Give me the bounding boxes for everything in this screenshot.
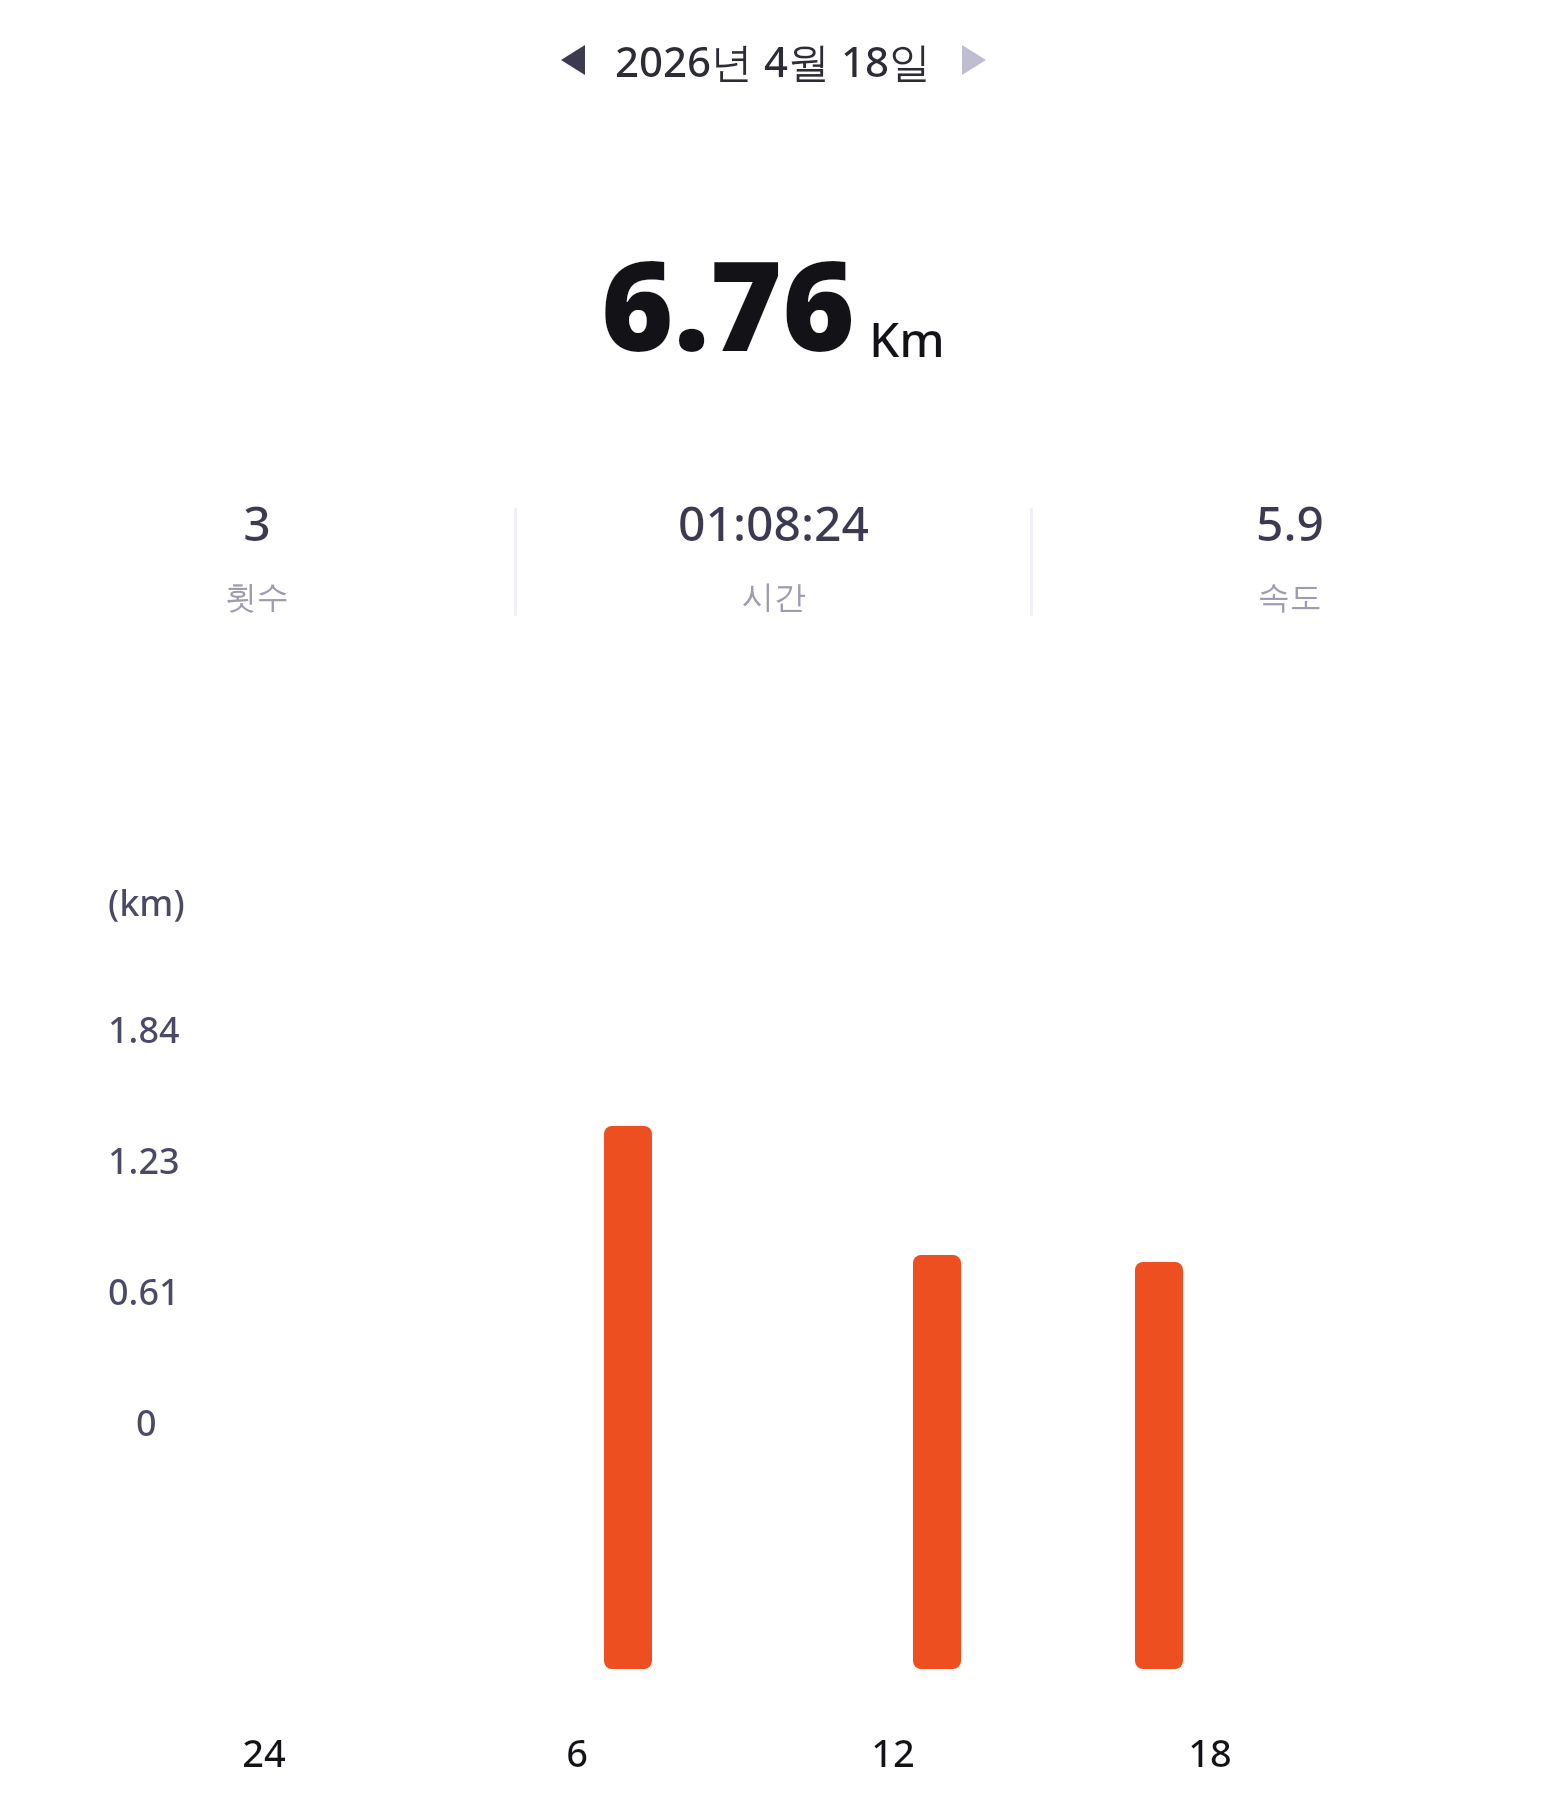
staticText: 6: [517, 1726, 637, 1778]
staticText: 6.76: [601, 218, 855, 387]
button[interactable]: Previous day: [545, 30, 601, 90]
staticText: 0.61: [108, 1267, 180, 1316]
staticText: 2026년 4월 18일: [615, 32, 932, 89]
staticText: Km: [869, 306, 945, 371]
button[interactable]: Next day: [946, 30, 1002, 90]
staticText: 24: [204, 1726, 324, 1778]
button[interactable]: 01:08:24: [517, 490, 1030, 617]
staticText: 횟수: [225, 577, 289, 617]
button[interactable]: 3: [0, 490, 514, 617]
staticText: 5.9: [1256, 490, 1324, 555]
staticText: (km): [108, 878, 185, 927]
staticText: 12: [833, 1726, 953, 1778]
button[interactable]: 5.9: [1033, 490, 1546, 617]
staticText: 1.84: [108, 1005, 180, 1054]
staticText: 3: [243, 490, 271, 555]
staticText: 시간: [742, 577, 806, 617]
staticText: 1.23: [108, 1136, 180, 1185]
staticText: 01:08:24: [678, 490, 869, 555]
staticText: 속도: [1258, 577, 1322, 617]
staticText: 0: [136, 1398, 157, 1447]
staticText: 18: [1150, 1726, 1270, 1778]
